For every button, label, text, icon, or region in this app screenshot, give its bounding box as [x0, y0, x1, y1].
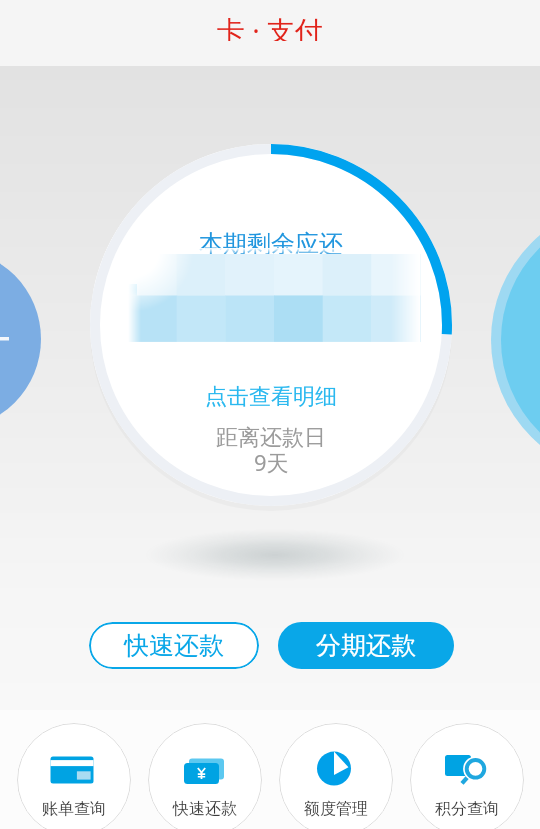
button[interactable]: 点击查看明细 [205, 383, 337, 411]
staticText: 距离还款日 [216, 424, 326, 451]
staticText: 额度管理 [304, 799, 368, 819]
button[interactable]: 额度管理 [279, 723, 393, 829]
staticText: 卡 · 支付 [217, 11, 324, 41]
staticText: 快速还款 [173, 799, 237, 819]
staticText: 9天 [254, 447, 289, 474]
staticText: 积分查询 [435, 799, 499, 819]
button[interactable]: 积分查询 [410, 723, 524, 829]
staticText: 本期剩余应还 [199, 229, 343, 259]
staticText: 快速还款 [124, 630, 224, 661]
button[interactable]: 账单查询 [17, 723, 131, 829]
staticText: 分期还款 [316, 630, 416, 661]
button[interactable]: 快速还款 [89, 622, 259, 669]
staticText: 账单查询 [42, 799, 106, 819]
button[interactable]: 分期还款 [278, 622, 454, 669]
button[interactable]: 快速还款 [148, 723, 262, 829]
staticText: 点击查看明细 [205, 383, 337, 411]
